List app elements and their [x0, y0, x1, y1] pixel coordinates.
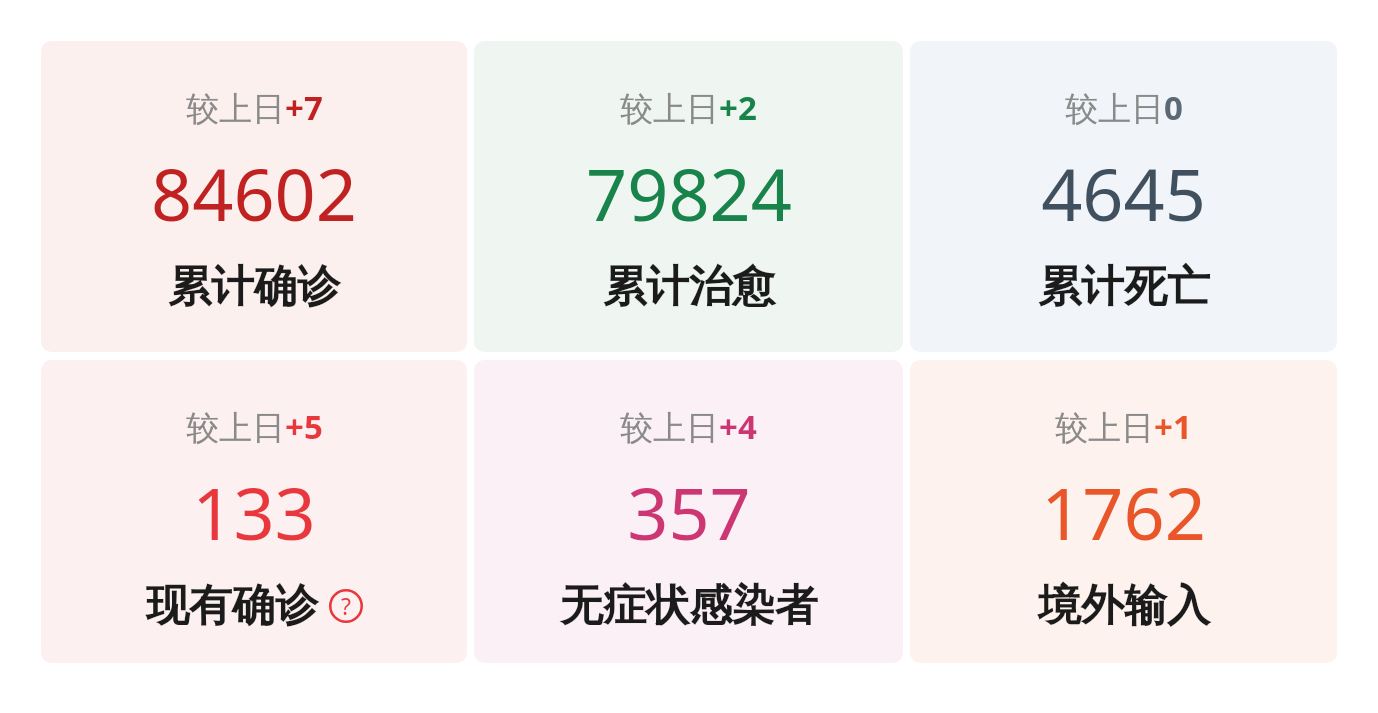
- staticText: +4: [719, 404, 757, 449]
- button[interactable]: 较上日: [474, 360, 903, 663]
- staticText: 较上日: [620, 88, 719, 130]
- staticText: ?: [341, 590, 351, 621]
- staticText: 357: [627, 463, 751, 561]
- staticText: 无症状感染者: [560, 579, 818, 633]
- staticText: +2: [719, 85, 757, 130]
- staticText: 较上日: [1055, 407, 1154, 449]
- staticText: 较上日: [1065, 88, 1164, 130]
- button[interactable]: 较上日: [41, 41, 467, 352]
- staticText: +7: [285, 85, 323, 130]
- staticText: 79824: [586, 144, 792, 242]
- button[interactable]: 较上日: [910, 360, 1337, 663]
- button[interactable]: 较上日: [41, 360, 467, 663]
- button[interactable]: 较上日: [910, 41, 1337, 352]
- staticText: 境外输入: [1038, 579, 1210, 633]
- staticText: 较上日: [186, 88, 285, 130]
- staticText: 累计死亡: [1038, 260, 1210, 314]
- staticText: +5: [285, 404, 323, 449]
- staticText: 0: [1164, 85, 1183, 130]
- staticText: 1762: [1041, 463, 1206, 561]
- staticText: +1: [1154, 404, 1192, 449]
- staticText: 4645: [1041, 144, 1206, 242]
- staticText: 133: [192, 463, 316, 561]
- button[interactable]: 现有确诊说明: [329, 589, 363, 623]
- staticText: 84602: [151, 144, 357, 242]
- staticText: 现有确诊: [146, 579, 318, 633]
- staticText: 较上日: [620, 407, 719, 449]
- staticText: 累计治愈: [603, 260, 775, 314]
- button[interactable]: 较上日: [474, 41, 903, 352]
- staticText: 较上日: [186, 407, 285, 449]
- staticText: 累计确诊: [168, 260, 340, 314]
